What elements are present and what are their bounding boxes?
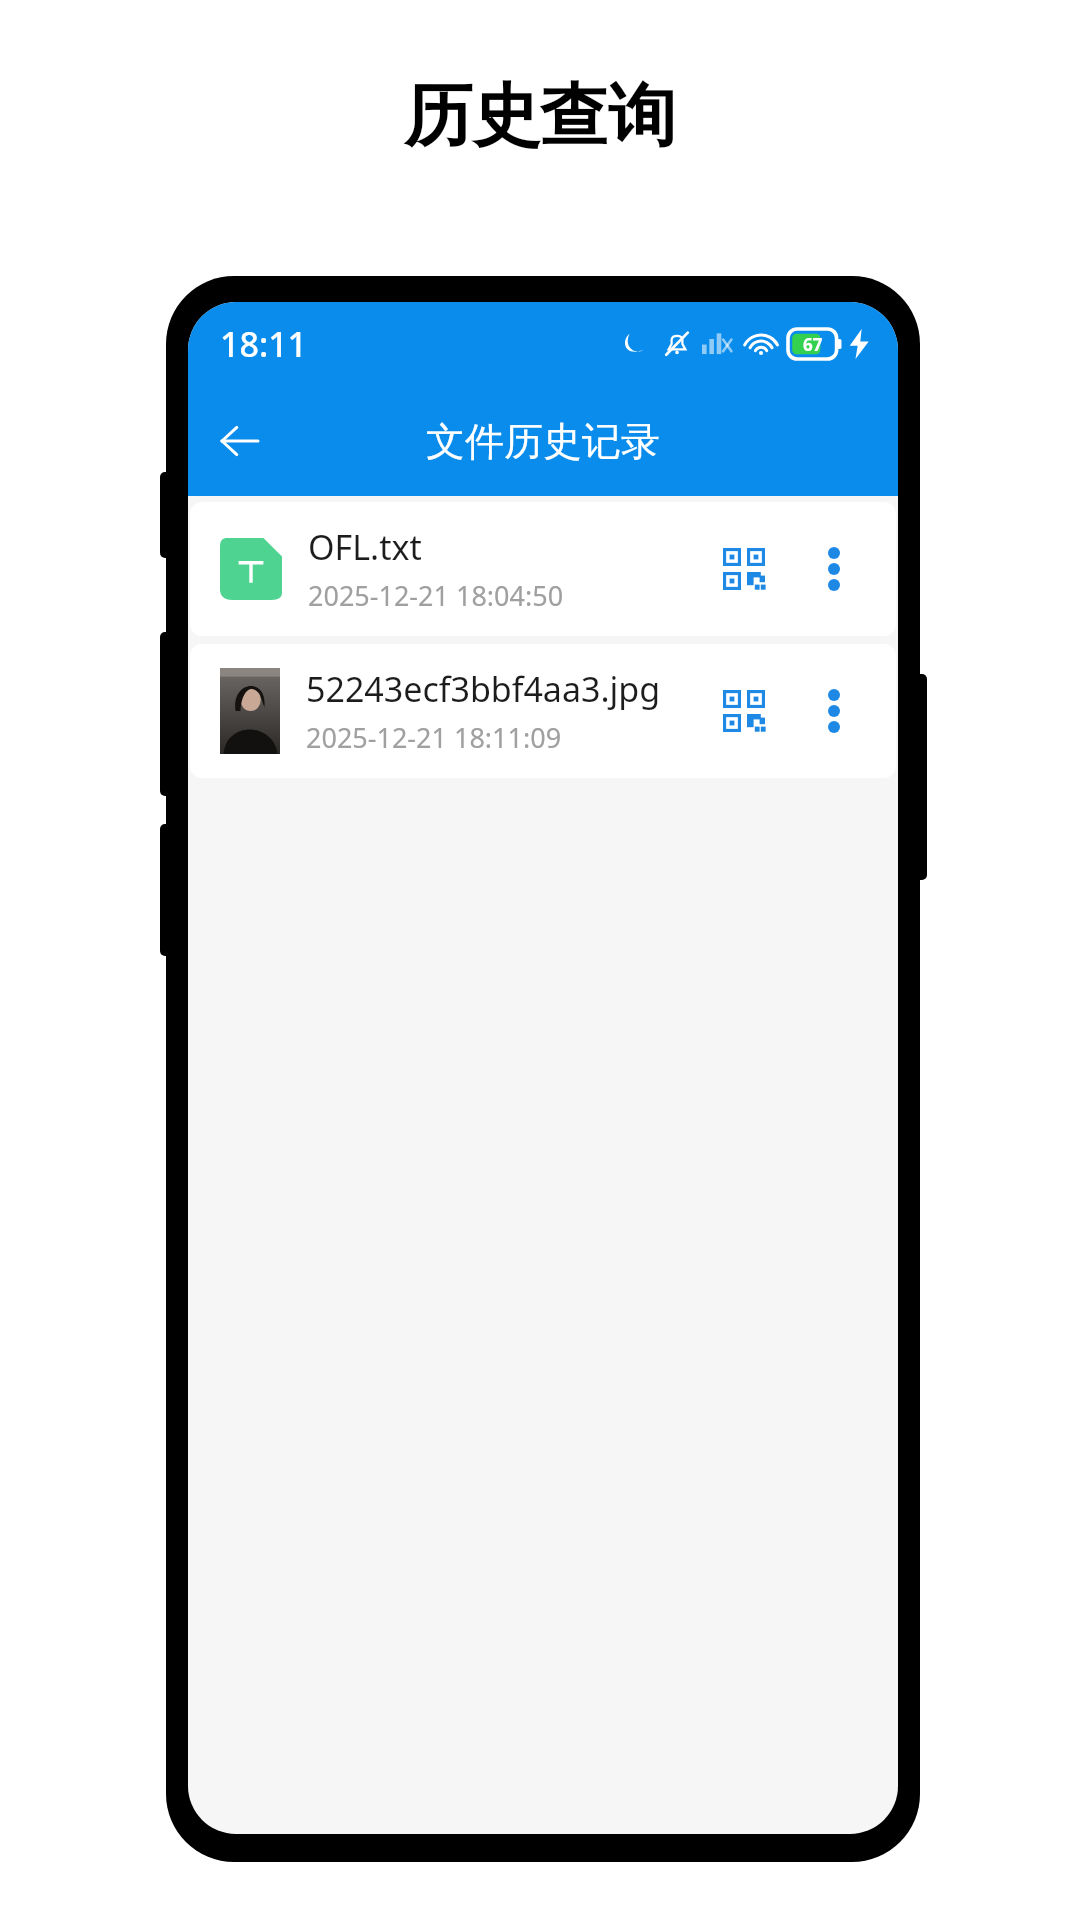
staticText: 67 <box>803 333 823 356</box>
button[interactable]: 52243ecf3bbf4aa3.jpg <box>190 644 896 778</box>
button[interactable]: Show QR code <box>706 673 782 749</box>
button[interactable]: Show QR code <box>706 531 782 607</box>
staticText: 历史查询 <box>404 74 676 160</box>
button[interactable]: Back <box>204 405 276 477</box>
button[interactable]: More options <box>798 675 870 747</box>
staticText: 2025-12-21 18:11:09 <box>306 719 562 756</box>
button[interactable]: OFL.txt <box>190 502 896 636</box>
staticText: 2025-12-21 18:04:50 <box>308 577 564 614</box>
staticText: 18:11 <box>220 321 308 367</box>
staticText: 52243ecf3bbf4aa3.jpg <box>306 666 661 712</box>
staticText: 文件历史记录 <box>426 417 660 466</box>
button[interactable]: More options <box>798 533 870 605</box>
staticText: OFL.txt <box>308 524 422 570</box>
